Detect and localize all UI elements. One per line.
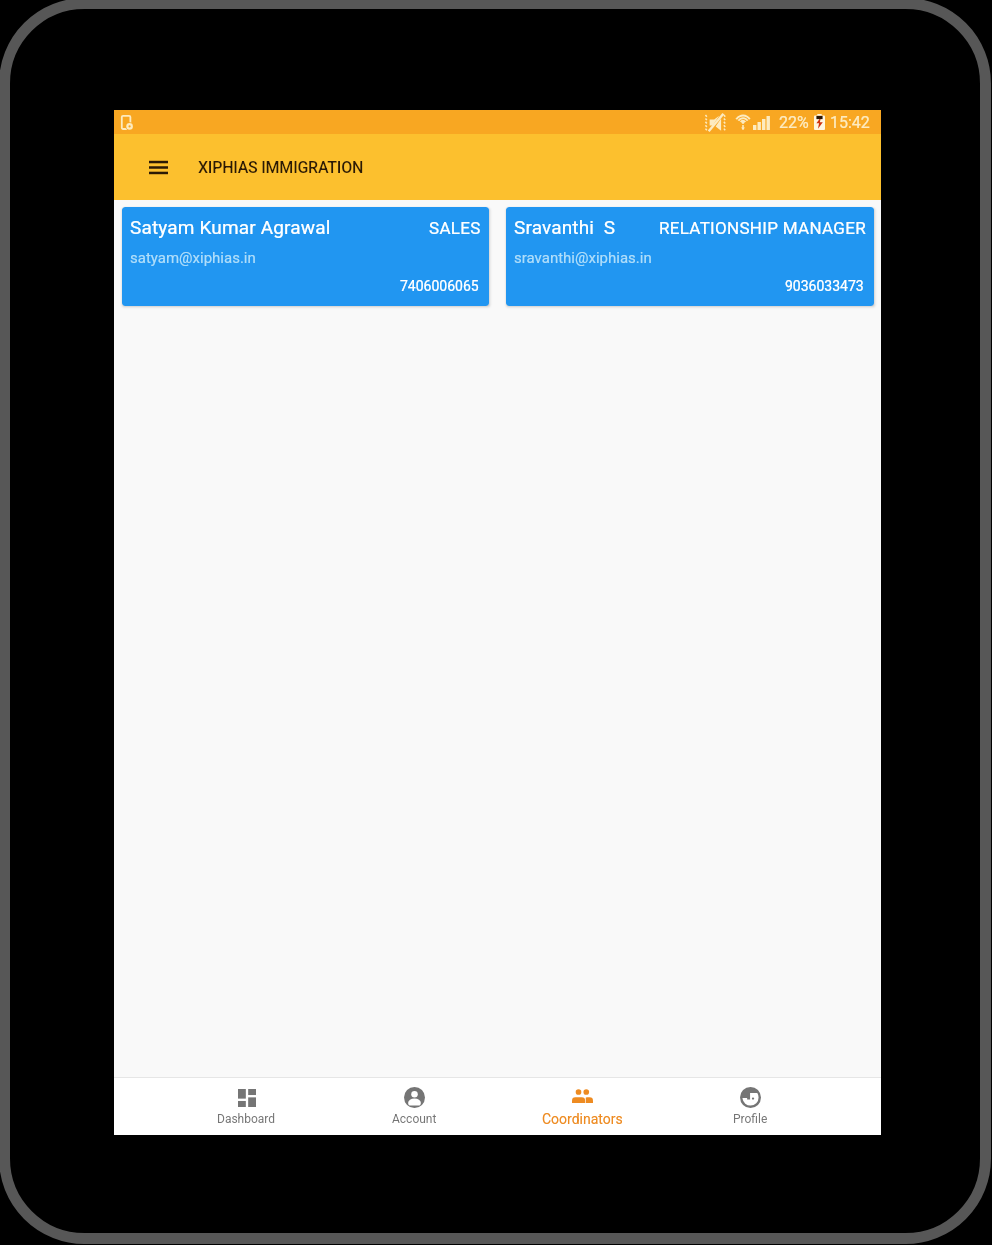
staticText: Satyam Kumar Agrawal (130, 216, 331, 238)
staticText: 22% (779, 113, 809, 132)
staticText: Sravanthi S (514, 216, 616, 238)
staticText: sravanthi@xiphias.in (514, 249, 652, 267)
button[interactable]: Account (372, 1077, 456, 1135)
staticText: Dashboard (217, 1112, 276, 1126)
staticText: Coordinators (542, 1111, 623, 1127)
staticText: SALES (429, 218, 481, 238)
staticText: 7406006065 (400, 278, 479, 294)
staticText: 9036033473 (785, 278, 864, 294)
staticText: Profile (733, 1112, 768, 1126)
staticText: RELATIONSHIP MANAGER (659, 218, 866, 238)
staticText: XIPHIAS IMMIGRATION (198, 158, 364, 177)
button[interactable]: Coordinators (540, 1077, 624, 1135)
staticText: 15:42 (830, 113, 870, 132)
button[interactable]: Satyam Kumar Agrawal (122, 207, 489, 306)
staticText: satyam@xiphias.in (130, 249, 256, 267)
button[interactable]: Profile (708, 1077, 792, 1135)
button[interactable]: Open navigation menu (136, 134, 180, 200)
button[interactable]: Dashboard (204, 1077, 288, 1135)
staticText: Account (392, 1112, 437, 1126)
button[interactable]: Sravanthi S (506, 207, 874, 306)
